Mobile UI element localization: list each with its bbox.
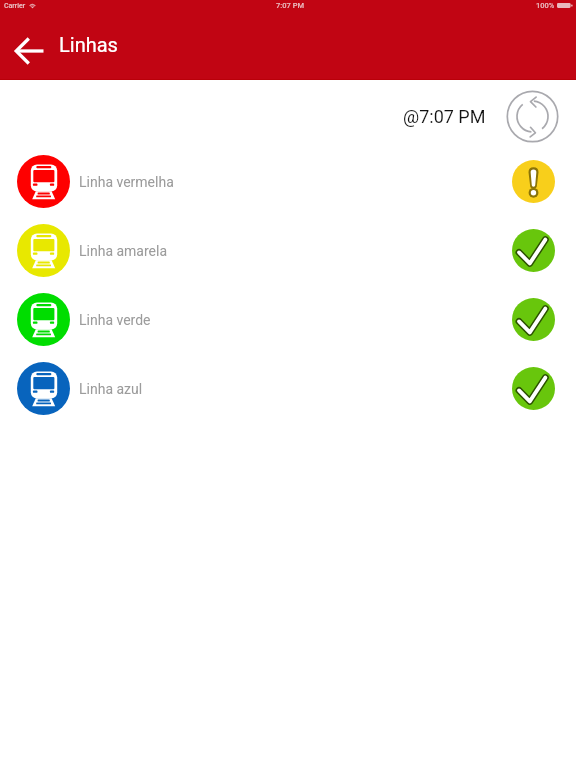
other: OK — [512, 298, 555, 341]
button[interactable]: Back — [8, 31, 48, 71]
staticText: @7:07 PM — [403, 106, 486, 127]
button[interactable]: Linha azul — [0, 354, 576, 423]
button[interactable]: Refresh — [507, 90, 560, 143]
button[interactable]: Linha verde — [0, 285, 576, 354]
staticText: Linha verde — [79, 312, 151, 328]
button[interactable]: Linha amarela — [0, 216, 576, 285]
staticText: Linhas — [59, 33, 118, 56]
staticText: Linha amarela — [79, 243, 168, 259]
staticText: Carrier — [4, 2, 26, 10]
button[interactable]: Linha vermelha — [0, 147, 576, 216]
staticText: 100% — [536, 1, 555, 10]
other: OK — [512, 229, 555, 272]
other: Alert — [512, 160, 555, 203]
staticText: 7:07 PM — [2, 1, 576, 10]
other: OK — [512, 367, 555, 410]
staticText: Linha vermelha — [79, 174, 174, 190]
staticText: Linha azul — [79, 381, 143, 397]
